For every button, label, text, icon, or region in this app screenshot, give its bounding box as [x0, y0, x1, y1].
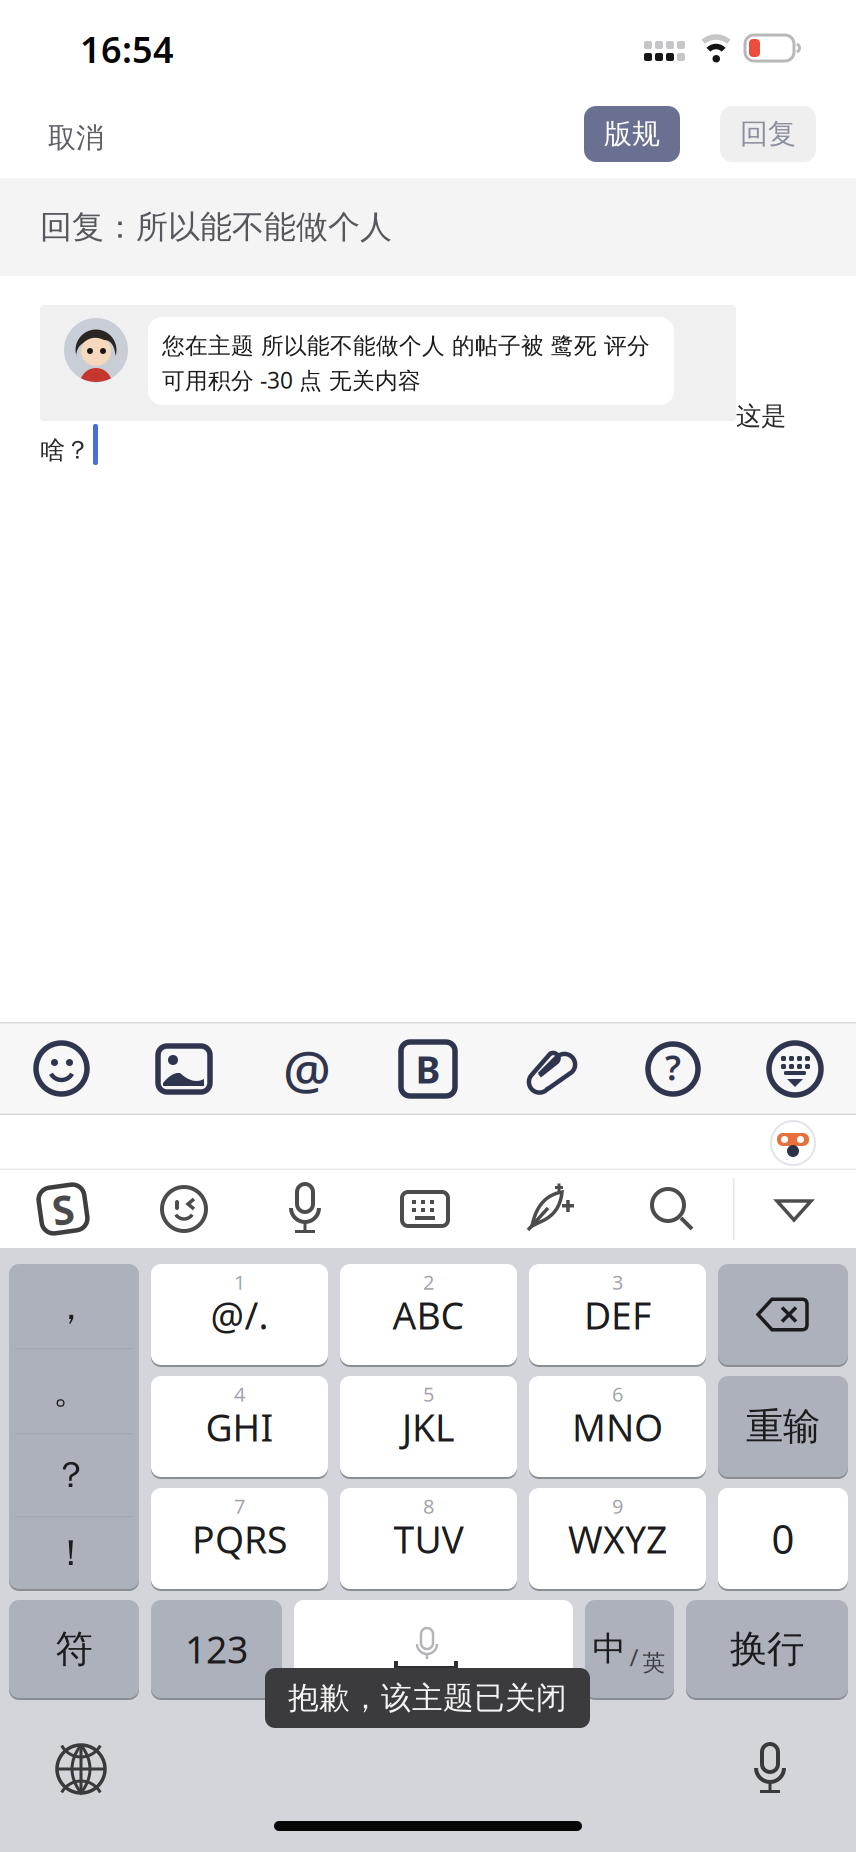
staticText: 2 — [423, 1269, 434, 1295]
button[interactable]: 搜狗 — [0, 1170, 856, 1248]
staticText: 9 — [612, 1493, 623, 1519]
staticText: 0 — [771, 1512, 794, 1565]
button[interactable]: 切换输入法 — [0, 1248, 856, 1852]
staticText: 3 — [612, 1269, 623, 1295]
staticText: 符 — [55, 1626, 92, 1672]
button[interactable]: 。 — [9, 1264, 139, 1589]
button[interactable]: 6 — [529, 1376, 706, 1477]
button[interactable]: 语音 — [0, 1170, 856, 1248]
button[interactable]: 表情 — [0, 1022, 856, 1115]
staticText: ？ — [53, 1453, 89, 1497]
staticText: 抱歉，该主题已关闭 — [288, 1679, 567, 1717]
staticText: PQRS — [192, 1514, 287, 1564]
button[interactable]: 回复 — [0, 90, 856, 178]
staticText: TUV — [393, 1514, 463, 1564]
staticText: 可用积分 -30 点 无关内容 — [162, 365, 421, 395]
button[interactable]: 版规 — [0, 90, 856, 178]
staticText: 啥？ — [40, 434, 90, 465]
staticText: 换行 — [730, 1626, 804, 1672]
button[interactable]: ！ — [9, 1264, 139, 1589]
button[interactable]: 键盘 — [0, 1170, 856, 1248]
button[interactable]: 9 — [529, 1488, 706, 1589]
staticText: 4 — [234, 1381, 245, 1407]
staticText: 中 — [592, 1628, 625, 1669]
button[interactable]: 收起键盘 — [0, 1022, 856, 1115]
staticText: MNO — [572, 1402, 663, 1452]
staticText: ！ — [53, 1531, 89, 1575]
staticText: WXYZ — [568, 1514, 667, 1564]
button[interactable]: 帮助 — [0, 1022, 856, 1115]
button[interactable]: 1 — [151, 1264, 328, 1365]
button[interactable]: 手写 — [0, 1170, 856, 1248]
staticText: ABC — [392, 1290, 464, 1340]
staticText: @/. — [210, 1290, 268, 1340]
staticText: 7 — [234, 1493, 245, 1519]
staticText: @ — [283, 1034, 331, 1104]
button[interactable]: 听写 — [0, 1248, 856, 1852]
staticText: 6 — [612, 1381, 623, 1407]
staticText: 版规 — [604, 117, 660, 151]
button[interactable]: 删除 — [0, 1248, 856, 1852]
button[interactable]: 8 — [340, 1488, 517, 1589]
button[interactable]: 5 — [340, 1376, 517, 1477]
staticText: 。 — [53, 1369, 89, 1413]
button[interactable]: 提及 — [0, 1022, 856, 1115]
button[interactable]: 符 — [9, 1600, 139, 1698]
staticText: DEF — [584, 1290, 651, 1340]
staticText: 回复：所以能不能做个人 — [40, 207, 392, 247]
button[interactable]: 7 — [151, 1488, 328, 1589]
staticText: 您在主题 所以能不能做个人 的帖子被 鹭死 评分 — [162, 332, 650, 360]
button[interactable]: 123 — [151, 1600, 282, 1698]
button[interactable]: 图片 — [0, 1022, 856, 1115]
button[interactable]: 重输 — [718, 1376, 848, 1477]
staticText: JKL — [402, 1402, 455, 1452]
button[interactable]: 3 — [529, 1264, 706, 1365]
button[interactable]: 输入助手 — [0, 1115, 856, 1170]
button[interactable]: 中英切换 — [585, 1600, 674, 1698]
staticText: 英 — [642, 1649, 665, 1677]
staticText: 1 — [234, 1269, 245, 1295]
staticText: / — [629, 1641, 638, 1673]
staticText: 取消 — [48, 121, 104, 155]
button[interactable]: 0 — [718, 1488, 848, 1589]
button[interactable]: 搜索 — [0, 1170, 856, 1248]
button[interactable]: 空格 — [294, 1600, 573, 1698]
staticText: 重输 — [746, 1404, 820, 1449]
button[interactable]: 2 — [340, 1264, 517, 1365]
button[interactable]: 表情 — [0, 1170, 856, 1248]
staticText: S — [52, 1182, 74, 1235]
staticText: 回复 — [740, 117, 796, 151]
staticText: 这是 — [736, 400, 786, 431]
staticText: GHI — [205, 1402, 273, 1452]
staticText: ? — [665, 1044, 681, 1090]
button[interactable]: ， — [9, 1264, 139, 1589]
button[interactable]: 4 — [151, 1376, 328, 1477]
button[interactable]: 加粗 — [0, 1022, 856, 1115]
button[interactable]: 收起键盘 — [0, 1170, 856, 1248]
staticText: 8 — [423, 1493, 434, 1519]
button[interactable]: 取消 — [0, 90, 856, 178]
button[interactable]: 附件 — [0, 1022, 856, 1115]
staticText: 5 — [423, 1381, 434, 1407]
button[interactable]: 换行 — [686, 1600, 848, 1698]
staticText: B — [415, 1044, 440, 1094]
staticText: ， — [53, 1285, 89, 1329]
staticText: 123 — [185, 1624, 248, 1674]
staticText: 16:54 — [80, 25, 174, 73]
button[interactable]: ？ — [9, 1264, 139, 1589]
